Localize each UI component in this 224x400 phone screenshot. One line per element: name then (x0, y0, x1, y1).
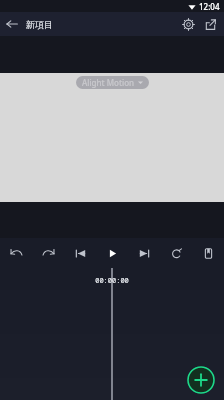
button[interactable]: Back (0, 12, 24, 36)
button[interactable]: Play (96, 238, 128, 268)
button[interactable]: Loop (160, 238, 192, 268)
button[interactable]: Bookmark (192, 238, 224, 268)
staticText: 新項目 (26, 19, 53, 30)
button[interactable]: Skip to start (64, 238, 96, 268)
button[interactable]: Add layer (186, 365, 216, 395)
button[interactable]: Settings (176, 12, 200, 36)
staticText: 00:00:00 (95, 276, 129, 286)
staticText: 12:04 (199, 1, 220, 12)
staticText: Alight Motion (82, 77, 135, 88)
button[interactable]: Skip to end (128, 238, 160, 268)
button[interactable]: Alight Motion (76, 76, 149, 89)
button[interactable]: Redo (32, 238, 64, 268)
button[interactable]: Undo (0, 238, 32, 268)
button[interactable]: Export (200, 12, 221, 36)
